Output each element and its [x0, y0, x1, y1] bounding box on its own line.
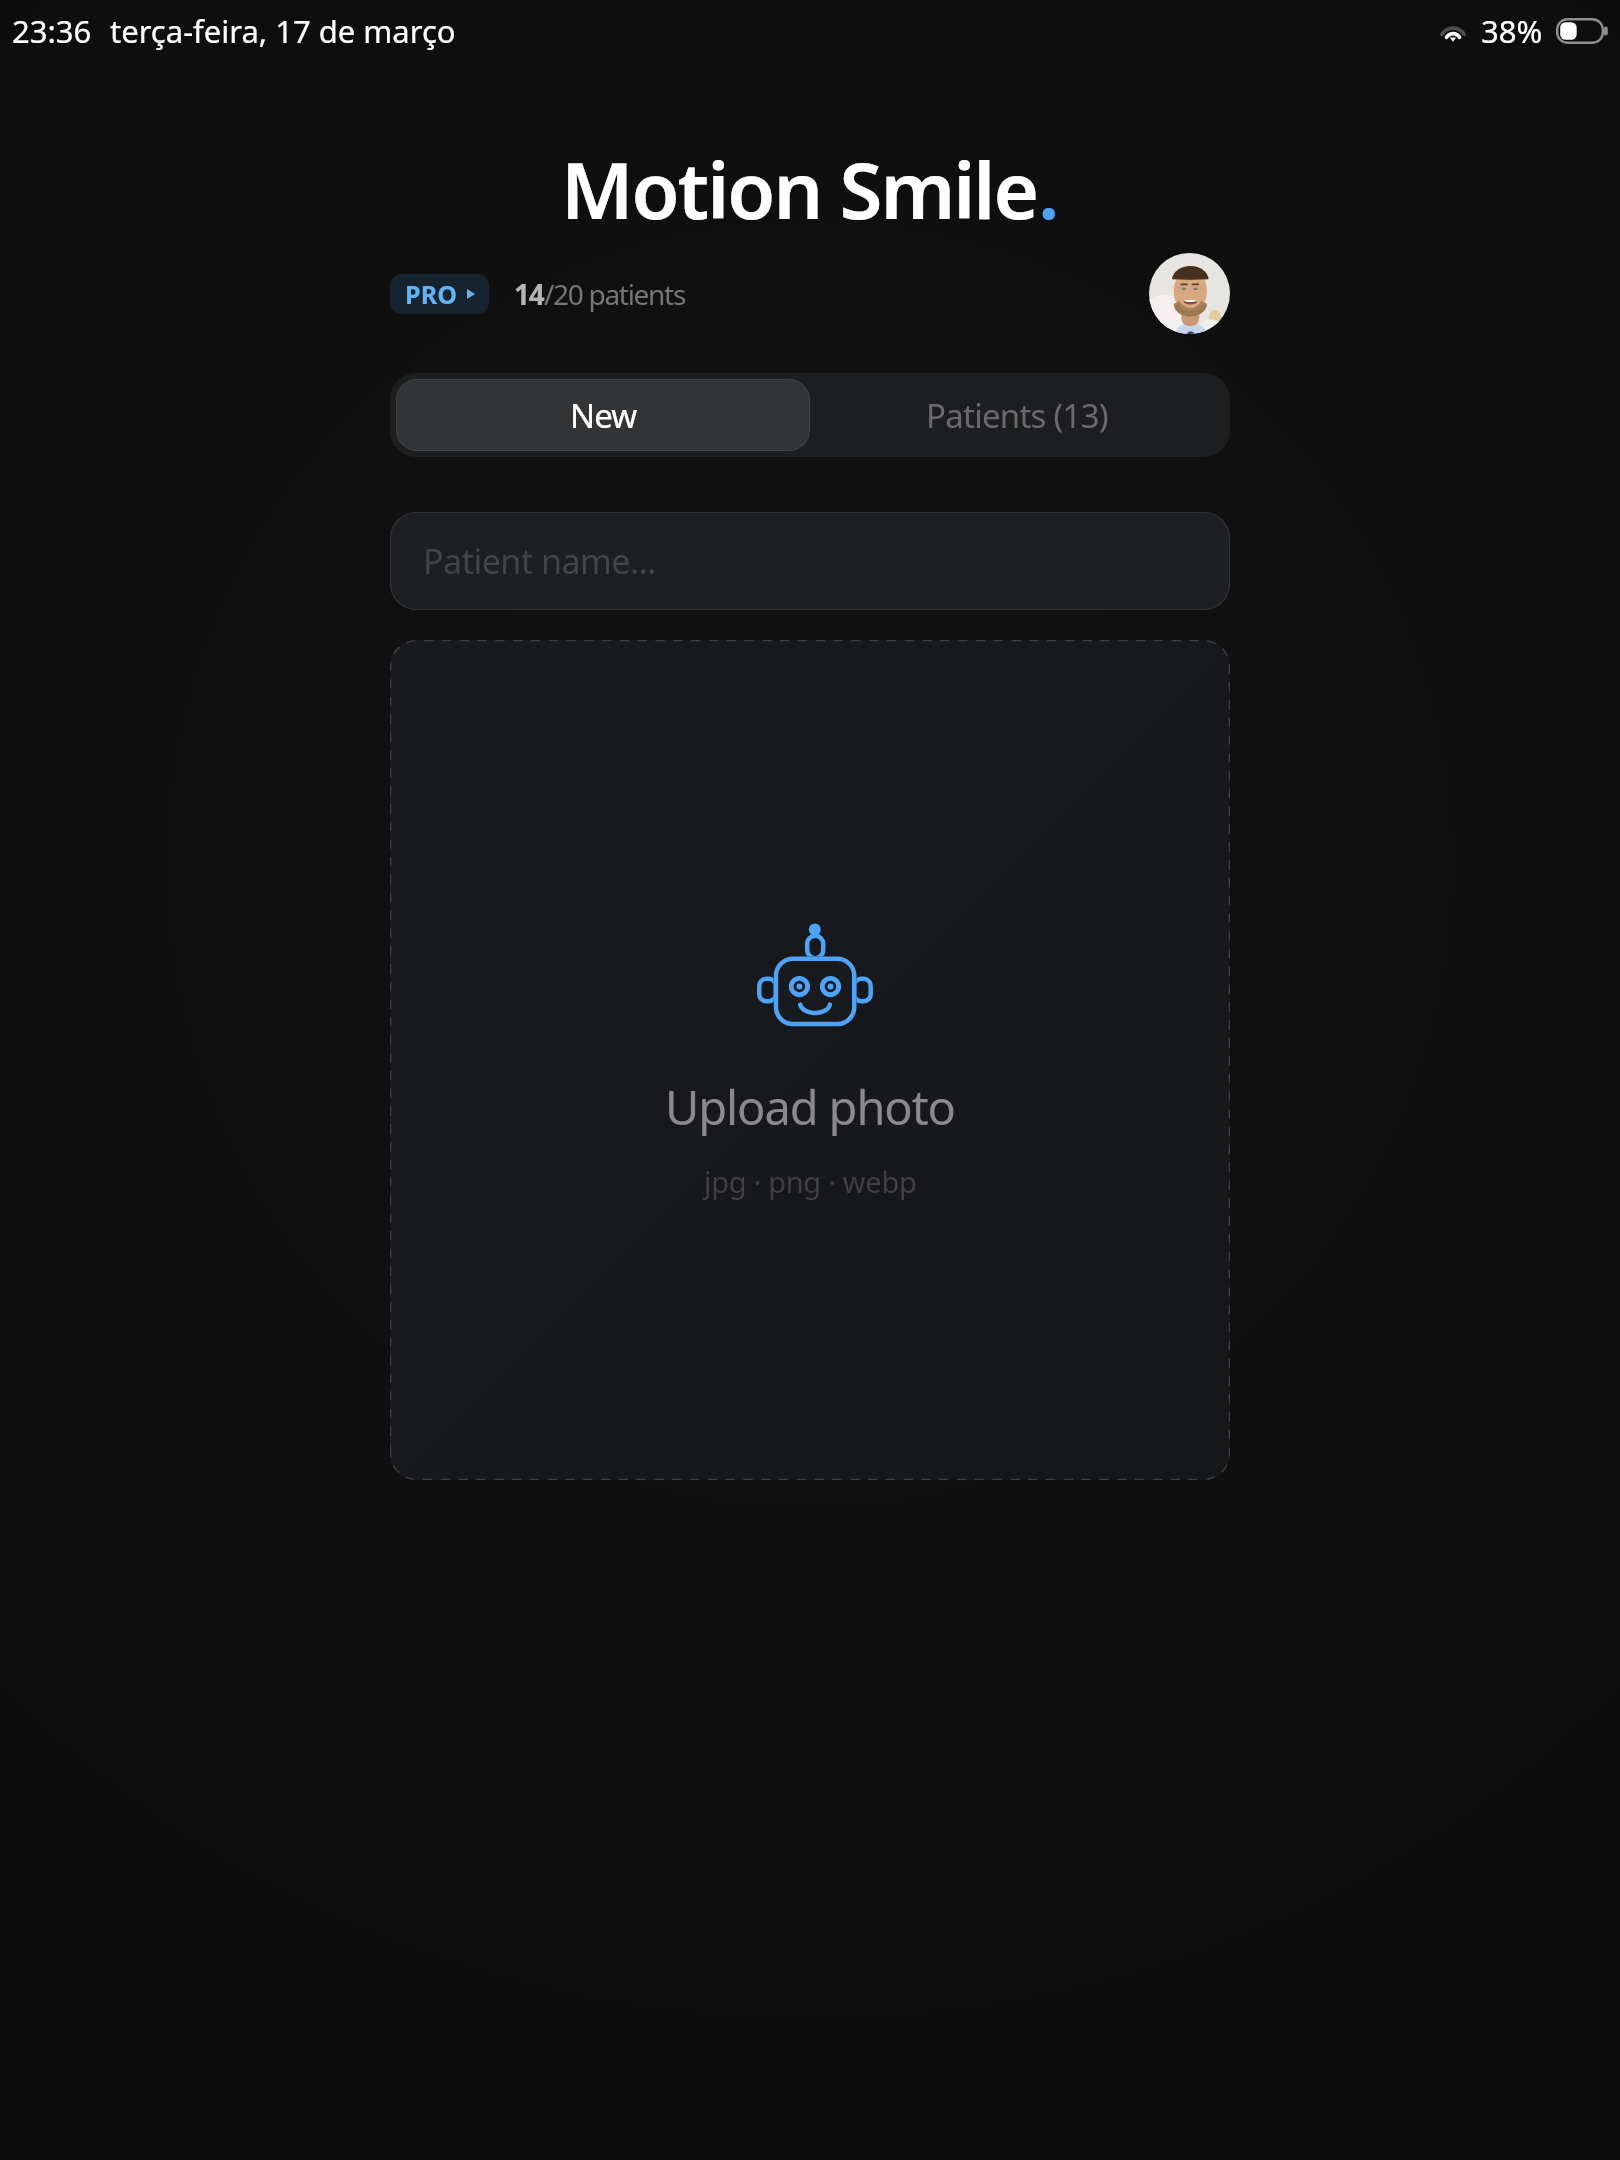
staticText: New: [570, 393, 637, 438]
button[interactable]: PRO: [390, 274, 489, 314]
staticText: Motion Smile: [561, 136, 1038, 242]
staticText: Patient name...: [423, 538, 656, 584]
staticText: 38%: [1481, 10, 1543, 52]
staticText: PRO: [405, 277, 458, 311]
staticText: 23:36: [12, 10, 92, 52]
staticText: Patients (13): [926, 393, 1109, 438]
button[interactable]: Upload photo: [390, 640, 1230, 1480]
staticText: .: [1038, 136, 1060, 242]
button[interactable]: Patient name: [390, 512, 1230, 610]
staticText: terça-feira, 17 de março: [110, 10, 456, 52]
button[interactable]: Profile: [1149, 253, 1230, 334]
staticText: Upload photo: [665, 1075, 955, 1139]
button[interactable]: New: [396, 379, 810, 451]
staticText: /20 patients: [544, 275, 686, 313]
staticText: jpg · png · webp: [704, 1162, 917, 1201]
button[interactable]: Patients (13): [810, 379, 1224, 451]
staticText: 14: [514, 275, 544, 313]
